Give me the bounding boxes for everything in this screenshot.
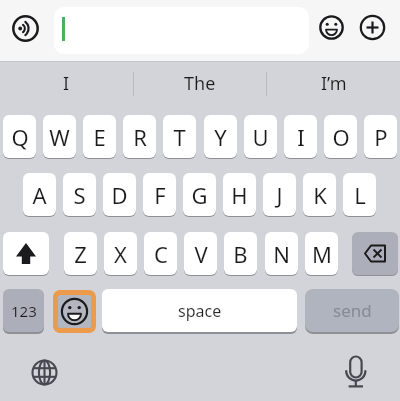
staticText: F — [154, 180, 166, 210]
staticText: M — [312, 239, 332, 269]
button[interactable]: J — [263, 173, 296, 216]
button[interactable]: Q — [3, 115, 36, 158]
button[interactable]: The — [133, 62, 266, 105]
staticText: R — [133, 122, 147, 152]
staticText: S — [73, 180, 86, 210]
staticText: W — [49, 122, 70, 152]
button[interactable]: H — [223, 173, 256, 216]
button[interactable]: A — [23, 173, 56, 216]
staticText: J — [276, 180, 283, 210]
button[interactable]: R — [123, 115, 156, 158]
staticText: P — [374, 122, 388, 152]
button[interactable]: M — [305, 232, 338, 275]
staticText: C — [154, 239, 168, 269]
button[interactable]: T — [163, 115, 196, 158]
button[interactable]: I’m — [267, 62, 400, 105]
button[interactable]: D — [103, 173, 136, 216]
button[interactable]: L — [343, 173, 376, 216]
staticText: send — [333, 299, 372, 322]
button[interactable]: Y — [204, 115, 237, 158]
staticText: G — [191, 180, 208, 210]
button[interactable]: K — [303, 173, 336, 216]
staticText: A — [32, 180, 47, 210]
button[interactable] — [319, 15, 344, 40]
staticText: Z — [74, 239, 87, 269]
button[interactable] — [53, 290, 96, 333]
staticText: Q — [11, 122, 29, 152]
button[interactable]: space — [102, 289, 297, 332]
button[interactable]: U — [244, 115, 277, 158]
staticText: D — [111, 180, 128, 210]
button[interactable]: S — [63, 173, 96, 216]
button[interactable]: F — [143, 173, 176, 216]
staticText: T — [173, 122, 186, 152]
staticText: E — [93, 122, 106, 152]
staticText: I — [297, 122, 305, 152]
staticText: Y — [214, 122, 227, 152]
staticText: B — [233, 239, 248, 269]
staticText: U — [252, 122, 269, 152]
button[interactable]: B — [224, 232, 257, 275]
button[interactable]: I — [284, 115, 317, 158]
button[interactable] — [352, 232, 398, 275]
button[interactable]: O — [324, 115, 357, 158]
button[interactable]: I — [0, 62, 133, 105]
staticText: H — [231, 180, 248, 210]
staticText: L — [354, 180, 366, 210]
button[interactable] — [360, 15, 385, 40]
button[interactable]: 123 — [3, 289, 44, 332]
staticText: I — [63, 71, 70, 96]
staticText: O — [332, 122, 350, 152]
staticText: I’m — [321, 71, 347, 96]
staticText: V — [194, 239, 208, 269]
button[interactable] — [31, 359, 58, 386]
button[interactable]: X — [104, 232, 137, 275]
staticText: space — [178, 300, 222, 322]
button[interactable]: V — [184, 232, 217, 275]
button[interactable]: W — [43, 115, 76, 158]
button[interactable]: P — [364, 115, 397, 158]
staticText: X — [114, 239, 127, 269]
button[interactable]: send — [305, 289, 399, 332]
button[interactable] — [12, 15, 39, 42]
button[interactable]: E — [83, 115, 116, 158]
button[interactable] — [341, 350, 371, 392]
staticText: 123 — [11, 301, 37, 321]
staticText: K — [313, 180, 327, 210]
button[interactable]: Z — [64, 232, 97, 275]
button[interactable] — [54, 7, 309, 54]
button[interactable]: G — [183, 173, 216, 216]
button[interactable] — [3, 232, 49, 275]
staticText: The — [184, 71, 216, 96]
button[interactable]: N — [265, 232, 298, 275]
button[interactable]: C — [144, 232, 177, 275]
staticText: N — [273, 239, 290, 269]
